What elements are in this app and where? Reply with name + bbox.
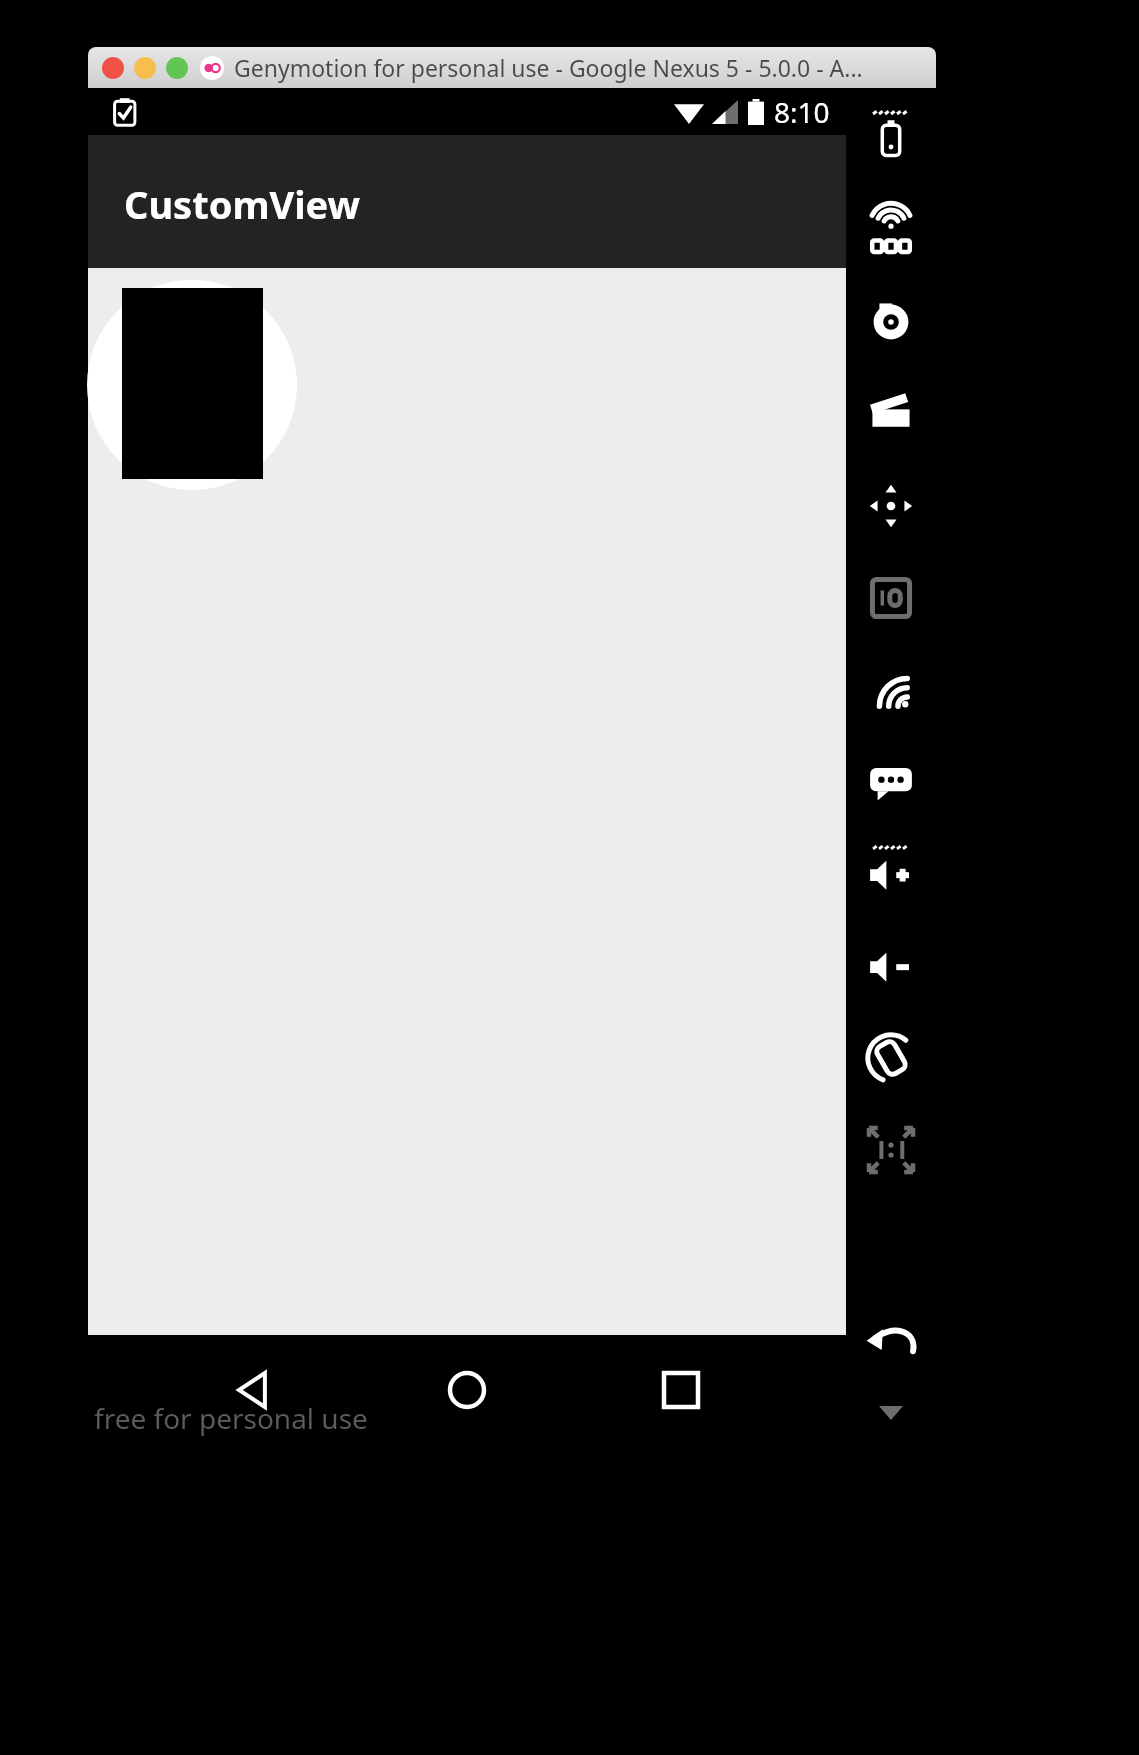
button[interactable]: Identifiers: [846, 552, 936, 644]
staticText: Genymotion for personal use - Google Nex…: [234, 52, 863, 83]
button[interactable]: Accelerometer: [846, 460, 936, 552]
button[interactable]: Home: [419, 1342, 515, 1438]
button[interactable]: Custom drawing: [88, 258, 388, 558]
button[interactable]: Back: [206, 1342, 302, 1438]
button[interactable]: Minimise: [134, 57, 156, 79]
button[interactable]: GPS: [846, 184, 936, 276]
button[interactable]: SMS: [846, 736, 936, 828]
button[interactable]: Camera: [846, 276, 936, 368]
button[interactable]: Video recorder: [846, 368, 936, 460]
button[interactable]: Battery: [846, 92, 936, 184]
button[interactable]: More: [846, 1388, 936, 1438]
button[interactable]: Zoom 1:1: [846, 1104, 936, 1196]
button[interactable]: Recents: [633, 1342, 729, 1438]
staticText: free for personal use: [94, 1399, 368, 1437]
button[interactable]: Volume down: [846, 920, 936, 1012]
button[interactable]: Volume up: [846, 828, 936, 920]
button[interactable]: CustomView: [88, 135, 846, 268]
button[interactable]: Rotate: [846, 1012, 936, 1104]
staticText: CustomView: [124, 178, 360, 230]
button[interactable]: Close: [102, 57, 124, 79]
button[interactable]: Network: [846, 644, 936, 736]
button[interactable]: Back: [846, 1296, 936, 1388]
button[interactable]: Zoom: [166, 57, 188, 79]
staticText: 8:10: [774, 93, 830, 131]
